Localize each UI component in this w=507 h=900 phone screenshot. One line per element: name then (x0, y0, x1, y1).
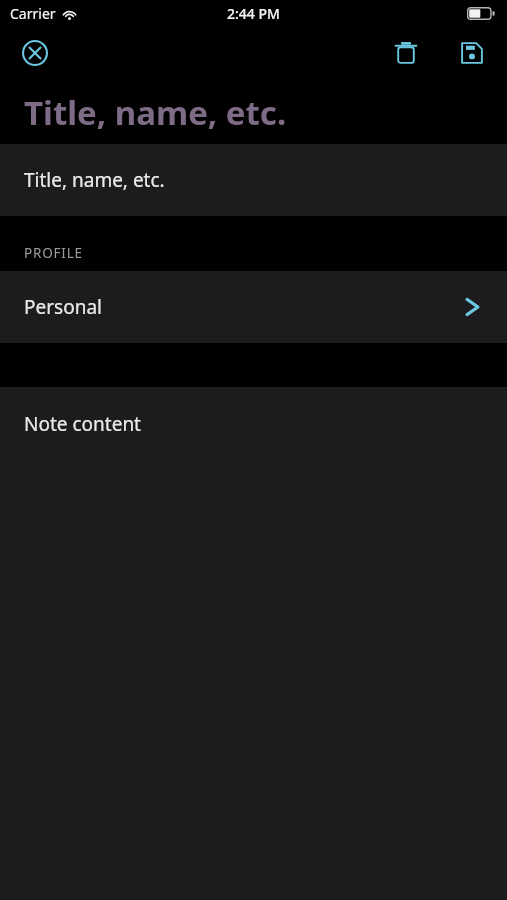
button[interactable]: Save (449, 30, 495, 76)
staticText: PROFILE (24, 244, 83, 262)
staticText: Personal (24, 294, 102, 320)
staticText: 2:44 PM (227, 4, 280, 23)
button[interactable]: Title, name, etc. (0, 144, 507, 216)
staticText: Title, name, etc. (24, 90, 287, 135)
button[interactable]: Close (13, 31, 57, 75)
staticText: Title, name, etc. (24, 167, 165, 193)
button[interactable]: Note content (0, 387, 507, 900)
button[interactable]: Delete (383, 30, 429, 76)
button[interactable]: Personal (0, 271, 507, 343)
staticText: Carrier (10, 4, 56, 23)
staticText: Note content (24, 411, 141, 437)
